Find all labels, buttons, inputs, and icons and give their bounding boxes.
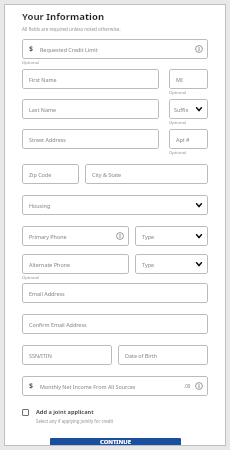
staticText: Last Name [29, 106, 154, 113]
button[interactable]: City & State [85, 164, 208, 184]
staticText: City & State [92, 171, 203, 178]
staticText: Your Information [22, 10, 105, 23]
staticText: Optional [169, 150, 186, 156]
staticText: Type [142, 261, 195, 268]
staticText: Optional [169, 90, 186, 96]
staticText: Confirm Email Address [29, 321, 203, 328]
button[interactable]: $ [22, 376, 208, 396]
button[interactable]: Confirm Email Address [22, 314, 208, 334]
staticText: CONTINUE [100, 438, 131, 446]
button[interactable]: Housing [22, 195, 208, 215]
staticText: Housing [29, 202, 195, 209]
button[interactable]: More information [195, 382, 203, 390]
button[interactable]: Apt # [169, 129, 208, 149]
button[interactable]: Street Address [22, 129, 159, 149]
staticText: Optional [169, 120, 186, 126]
button[interactable]: Suffix [169, 99, 208, 119]
button[interactable]: Zip Code [22, 164, 79, 184]
staticText: Requested Credit Limit [40, 46, 195, 53]
button[interactable]: CONTINUE [50, 438, 181, 446]
staticText: .00 [184, 383, 191, 389]
button[interactable]: First Name [22, 69, 159, 89]
staticText: SSN/ITIN [29, 352, 107, 359]
staticText: Street Address [29, 136, 154, 143]
button[interactable]: More information [195, 45, 203, 53]
button[interactable]: Type [135, 226, 208, 246]
button[interactable]: More information [116, 232, 124, 240]
staticText: Suffix [174, 106, 195, 113]
button[interactable]: Email Address [22, 283, 208, 303]
staticText: Monthly Net Income From All Sources [40, 383, 184, 390]
staticText: Select any if applying jointly for credi… [36, 418, 114, 424]
button[interactable]: Last Name [22, 99, 159, 119]
button[interactable]: Alternate Phone [22, 254, 129, 274]
button[interactable]: Date of Birth [118, 345, 208, 365]
staticText: Zip Code [29, 171, 74, 178]
staticText: MI [176, 76, 203, 83]
staticText: Type [142, 233, 195, 240]
button[interactable]: MI [169, 69, 208, 89]
staticText: Optional [22, 275, 39, 281]
staticText: $ [29, 381, 34, 391]
staticText: Alternate Phone [29, 261, 124, 268]
button[interactable]: SSN/ITIN [22, 345, 112, 365]
staticText: Primary Phone [29, 233, 116, 240]
button[interactable]: Primary Phone [22, 226, 129, 246]
staticText: Email Address [29, 290, 203, 297]
staticText: $ [29, 44, 34, 54]
staticText: All fields are required unless noted oth… [22, 26, 121, 32]
staticText: First Name [29, 76, 154, 83]
staticText: Apt # [176, 136, 203, 143]
button[interactable]: Add a joint applicant [22, 408, 208, 424]
staticText: Date of Birth [125, 352, 203, 359]
button[interactable]: $ [22, 39, 208, 59]
staticText: Optional [22, 60, 39, 66]
staticText: Add a joint applicant [36, 408, 94, 416]
button[interactable]: Type [135, 254, 208, 274]
